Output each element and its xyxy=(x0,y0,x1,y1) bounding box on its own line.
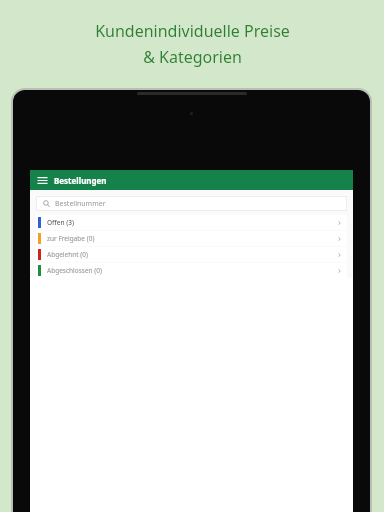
staticText: Abgelehnt (0) xyxy=(47,250,88,259)
button[interactable]: zur Freigabe (0) xyxy=(36,231,347,246)
staticText: Kundenindividuelle Preise xyxy=(95,20,290,42)
staticText: zur Freigabe (0) xyxy=(47,234,95,243)
button[interactable]: Offen (3) xyxy=(36,215,347,230)
staticText: Abgeschlossen (0) xyxy=(47,266,102,275)
button[interactable]: Abgelehnt (0) xyxy=(36,247,347,262)
staticText: Bestellungen xyxy=(54,175,107,186)
staticText: & Kategorien xyxy=(143,46,242,68)
button[interactable]: Bestellnummer xyxy=(36,196,347,211)
button[interactable]: Open navigation menu xyxy=(36,174,48,186)
button[interactable]: Abgeschlossen (0) xyxy=(36,263,347,278)
staticText: Offen (3) xyxy=(47,218,75,227)
staticText: Bestellnummer xyxy=(55,199,106,209)
